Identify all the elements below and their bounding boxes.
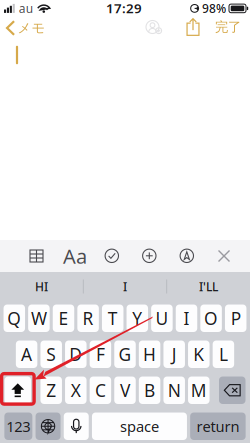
staticText: K xyxy=(193,343,204,366)
button[interactable]: Checklist xyxy=(96,240,127,271)
button[interactable]: H xyxy=(139,340,160,368)
staticText: J xyxy=(172,343,177,366)
button[interactable]: P xyxy=(225,304,246,332)
staticText: HI xyxy=(35,278,48,294)
staticText: R xyxy=(83,307,94,330)
staticText: Z xyxy=(46,379,56,402)
button[interactable]: space xyxy=(92,412,187,440)
button[interactable]: Dictation xyxy=(64,412,89,440)
staticText: 123 xyxy=(6,416,30,436)
button[interactable]: I xyxy=(176,304,197,332)
button[interactable]: Z xyxy=(40,376,62,404)
staticText: Q xyxy=(7,307,21,330)
button[interactable]: W xyxy=(28,304,50,332)
button[interactable]: Y xyxy=(126,304,148,332)
staticText: au xyxy=(19,0,33,16)
staticText: N xyxy=(168,379,181,402)
button[interactable]: Numbers xyxy=(4,412,32,440)
staticText: Y xyxy=(132,307,142,330)
button[interactable]: Dismiss Keyboard xyxy=(209,241,239,271)
staticText: Aa xyxy=(63,243,87,269)
button[interactable]: E xyxy=(53,304,74,332)
button[interactable]: R xyxy=(77,304,99,332)
staticText: C xyxy=(95,379,106,402)
staticText: E xyxy=(58,307,68,330)
staticText: A xyxy=(21,343,32,366)
button[interactable]: C xyxy=(90,376,111,404)
staticText: U xyxy=(155,307,168,330)
button[interactable]: Add People xyxy=(137,13,168,41)
button[interactable]: return xyxy=(190,412,246,440)
button[interactable]: Delete xyxy=(219,376,245,404)
button[interactable]: L xyxy=(213,340,234,368)
staticText: メモ xyxy=(17,20,45,36)
staticText: L xyxy=(219,343,228,366)
staticText: D xyxy=(69,343,82,366)
button[interactable]: HI xyxy=(0,270,83,302)
staticText: V xyxy=(120,379,130,402)
staticText: P xyxy=(231,307,241,330)
staticText: O xyxy=(204,307,218,330)
button[interactable]: J xyxy=(163,340,185,368)
staticText: G xyxy=(118,343,131,366)
button[interactable]: Next Keyboard xyxy=(35,412,60,440)
button[interactable]: Q xyxy=(3,304,25,332)
button[interactable]: Markup xyxy=(171,240,202,271)
button[interactable]: Table xyxy=(21,241,51,270)
button[interactable]: Shift xyxy=(4,376,31,404)
staticText: F xyxy=(96,343,105,366)
button[interactable]: O xyxy=(200,304,222,332)
staticText: B xyxy=(144,379,155,402)
button[interactable]: K xyxy=(188,340,209,368)
button[interactable]: D xyxy=(65,340,86,368)
button[interactable]: T xyxy=(102,304,123,332)
button[interactable]: Share xyxy=(179,11,207,43)
staticText: T xyxy=(108,307,118,330)
staticText: I'LL xyxy=(199,278,218,294)
staticText: S xyxy=(46,343,56,366)
button[interactable]: 完了 xyxy=(209,14,247,40)
staticText: return xyxy=(196,416,239,436)
button[interactable]: S xyxy=(40,340,62,368)
staticText: M xyxy=(191,379,207,402)
button[interactable]: Add Attachment xyxy=(134,240,165,271)
staticText: X xyxy=(71,379,81,402)
staticText: W xyxy=(31,307,47,330)
button[interactable]: B xyxy=(139,376,160,404)
staticText: 17:29 xyxy=(106,0,142,17)
button[interactable]: U xyxy=(151,304,173,332)
button[interactable]: G xyxy=(114,340,136,368)
staticText: space xyxy=(120,416,159,436)
button[interactable]: Text Format xyxy=(56,236,94,276)
button[interactable]: I'LL xyxy=(167,270,250,302)
button[interactable]: メモ xyxy=(1,15,50,41)
staticText: 完了 xyxy=(215,19,241,35)
button[interactable]: V xyxy=(114,376,136,404)
staticText: I xyxy=(183,307,189,330)
button[interactable]: F xyxy=(90,340,111,368)
button[interactable]: M xyxy=(188,376,210,404)
staticText: 98% xyxy=(202,0,226,16)
staticText: H xyxy=(143,343,156,366)
button[interactable]: A xyxy=(16,340,37,368)
staticText: I xyxy=(123,278,127,294)
button[interactable]: N xyxy=(163,376,185,404)
button[interactable]: X xyxy=(65,376,87,404)
button[interactable]: I xyxy=(83,270,166,302)
